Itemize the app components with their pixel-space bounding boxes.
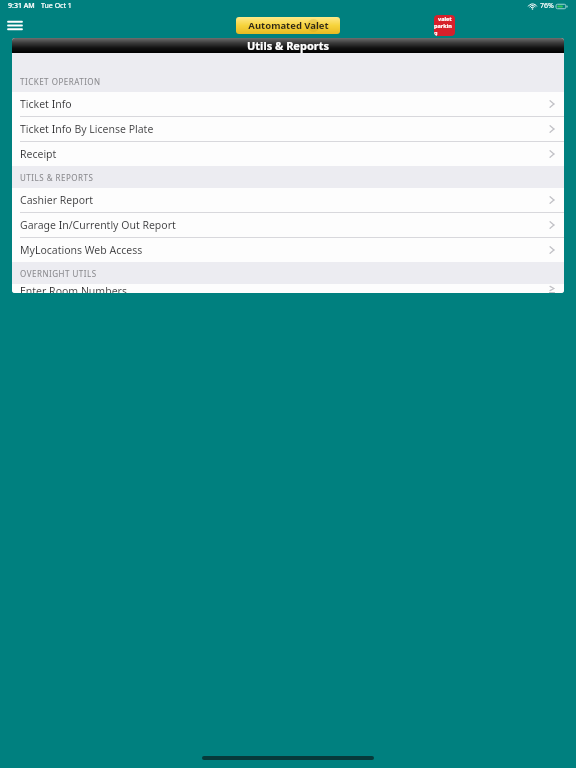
button[interactable]: Menu: [5, 15, 25, 35]
staticText: MyLocations Web Access: [20, 243, 143, 257]
button[interactable]: Garage In/Currently Out Report: [12, 213, 564, 237]
button[interactable]: Enter Room Numbers: [12, 284, 564, 293]
staticText: Cashier Report: [20, 193, 94, 207]
staticText: UTILS & REPORTS: [20, 172, 94, 183]
staticText: Enter Room Numbers: [20, 284, 127, 293]
staticText: 76%: [540, 1, 554, 11]
button[interactable]: Ticket Info: [12, 92, 564, 116]
staticText: Receipt: [20, 147, 57, 161]
button[interactable]: MyLocations Web Access: [12, 238, 564, 262]
staticText: Automated Valet: [248, 19, 329, 32]
staticText: Utils & Reports: [247, 38, 329, 53]
staticText: Garage In/Currently Out Report: [20, 218, 176, 232]
staticText: OVERNIGHT UTILS: [20, 268, 97, 279]
staticText: TICKET OPERATION: [20, 76, 101, 87]
button[interactable]: valet: [434, 15, 455, 36]
staticText: parking: [434, 22, 455, 36]
button[interactable]: Cashier Report: [12, 188, 564, 212]
staticText: Tue Oct 1: [41, 1, 72, 11]
staticText: Ticket Info: [20, 97, 72, 111]
staticText: 9:31 AM: [8, 1, 35, 11]
button[interactable]: Ticket Info By License Plate: [12, 117, 564, 141]
staticText: valet: [438, 15, 452, 22]
button[interactable]: Receipt: [12, 142, 564, 166]
staticText: Ticket Info By License Plate: [20, 122, 154, 136]
button[interactable]: Automated Valet: [236, 17, 340, 34]
